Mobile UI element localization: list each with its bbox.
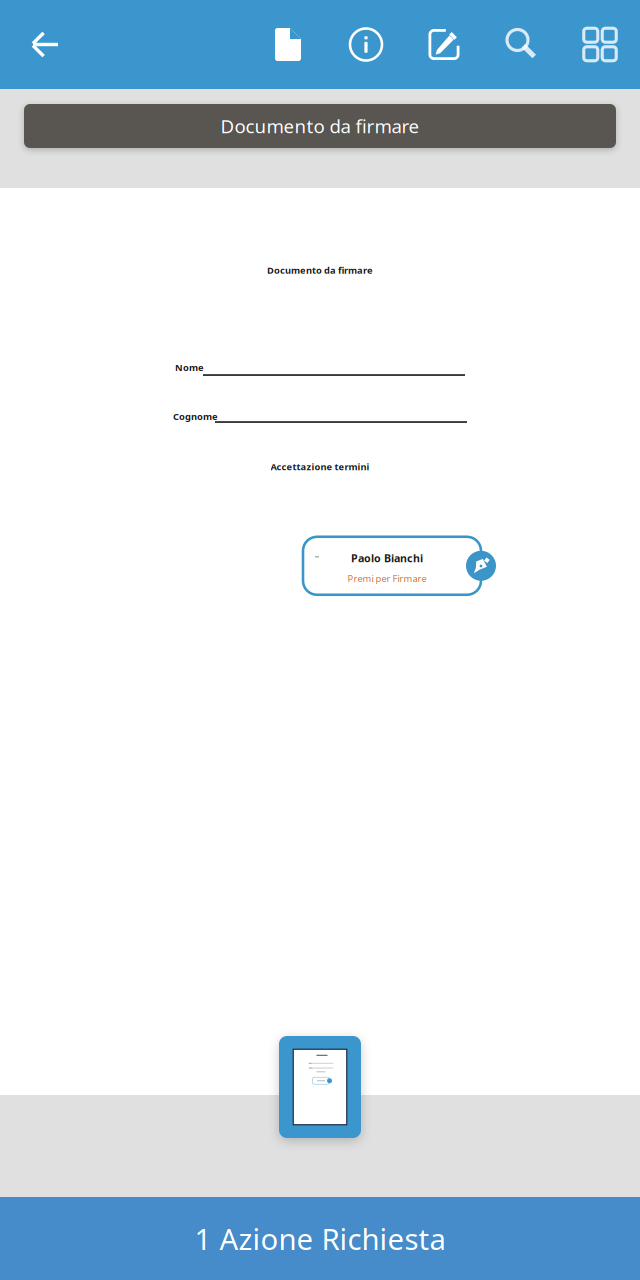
staticText: Documento da firmare [220,114,419,138]
button[interactable]: Pages [572,11,628,77]
button[interactable]: 1 Azione Richiesta [0,1197,640,1280]
staticText: Documento da firmare [267,264,373,276]
staticText: Premi per Firmare [347,572,426,585]
staticText: Nome [175,361,204,374]
staticText: 1 Azione Richiesta [194,1219,445,1258]
button[interactable]: Document [260,11,316,77]
button[interactable]: Paolo Bianchi [287,535,497,597]
staticText: Cognome [173,410,218,423]
button[interactable]: Back [7,11,83,77]
button[interactable]: Page 1 thumbnail [279,1036,361,1138]
button[interactable]: Search [494,11,550,77]
staticText: Accettazione termini [270,460,369,473]
button[interactable]: Annotate [416,11,472,77]
staticText: Paolo Bianchi [351,551,423,565]
button[interactable]: Info [338,11,394,77]
